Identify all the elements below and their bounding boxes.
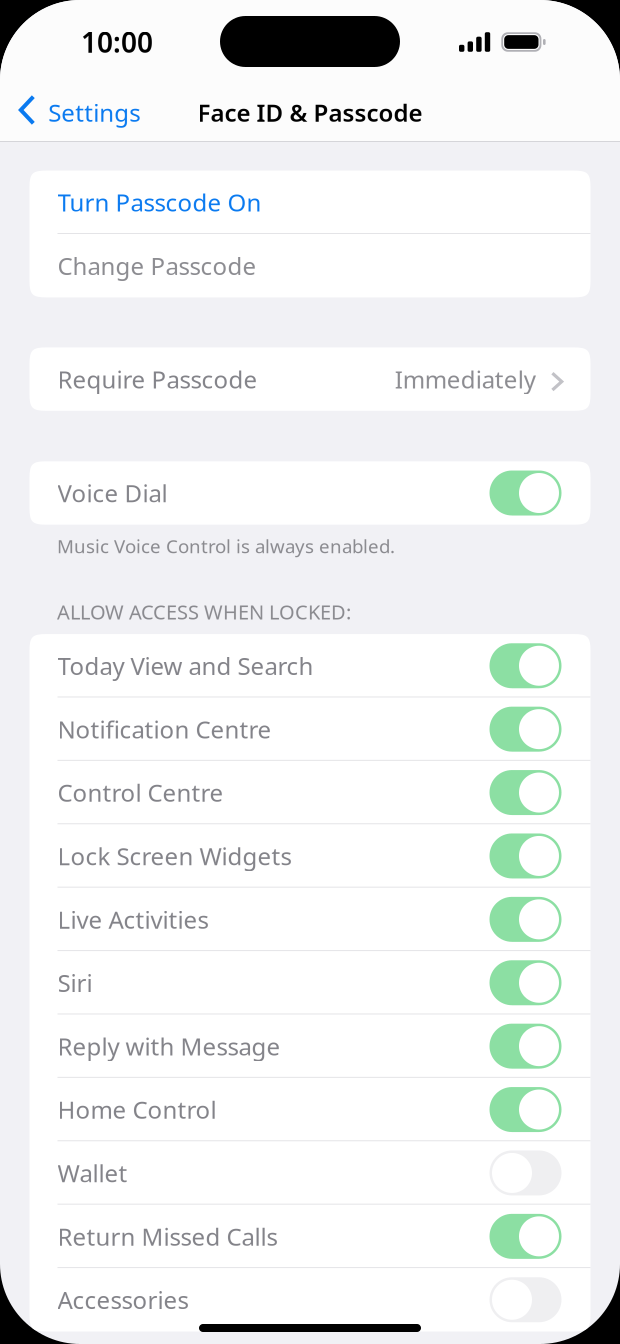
staticText: Require Passcode — [57, 363, 257, 395]
button[interactable]: Lock Screen Widgets — [29, 824, 590, 888]
staticText: Lock Screen Widgets — [57, 840, 291, 872]
button[interactable]: Home Control — [29, 1078, 590, 1141]
staticText: Notification Centre — [57, 713, 271, 745]
button[interactable]: Reply with Message — [29, 1014, 590, 1078]
staticText: Turn Passcode On — [57, 186, 261, 218]
button[interactable]: Control Centre — [29, 761, 590, 824]
staticText: Control Centre — [57, 777, 223, 808]
button[interactable]: Wallet — [29, 1141, 590, 1205]
staticText: 10:00 — [81, 23, 153, 61]
staticText: ALLOW ACCESS WHEN LOCKED: — [57, 598, 351, 625]
button[interactable]: Change Passcode — [29, 234, 590, 297]
staticText: Accessories — [57, 1284, 188, 1316]
staticText: Music Voice Control is always enabled. — [57, 534, 395, 558]
staticText: Return Missed Calls — [57, 1220, 277, 1252]
staticText: Siri — [57, 967, 92, 999]
staticText: Reply with Message — [57, 1030, 280, 1062]
staticText: Today View and Search — [57, 650, 313, 682]
button[interactable]: Return Missed Calls — [29, 1205, 590, 1268]
staticText: Change Passcode — [57, 250, 256, 282]
staticText: Home Control — [57, 1094, 216, 1125]
button[interactable]: Notification Centre — [29, 697, 590, 761]
button[interactable]: Accessories — [29, 1268, 590, 1331]
button[interactable]: Live Activities — [29, 888, 590, 951]
staticText: Settings — [48, 97, 140, 128]
staticText: Wallet — [57, 1157, 127, 1189]
button[interactable]: Today View and Search — [29, 634, 590, 697]
button[interactable]: Settings — [0, 84, 154, 141]
button[interactable]: Voice Dial — [29, 461, 590, 525]
staticText: Live Activities — [57, 903, 208, 935]
button[interactable]: Siri — [29, 951, 590, 1014]
button[interactable]: Turn Passcode On — [29, 171, 590, 234]
staticText: Immediately — [395, 363, 536, 395]
staticText: Face ID & Passcode — [197, 97, 422, 128]
staticText: Voice Dial — [57, 477, 167, 509]
button[interactable]: Require Passcode — [29, 347, 590, 411]
